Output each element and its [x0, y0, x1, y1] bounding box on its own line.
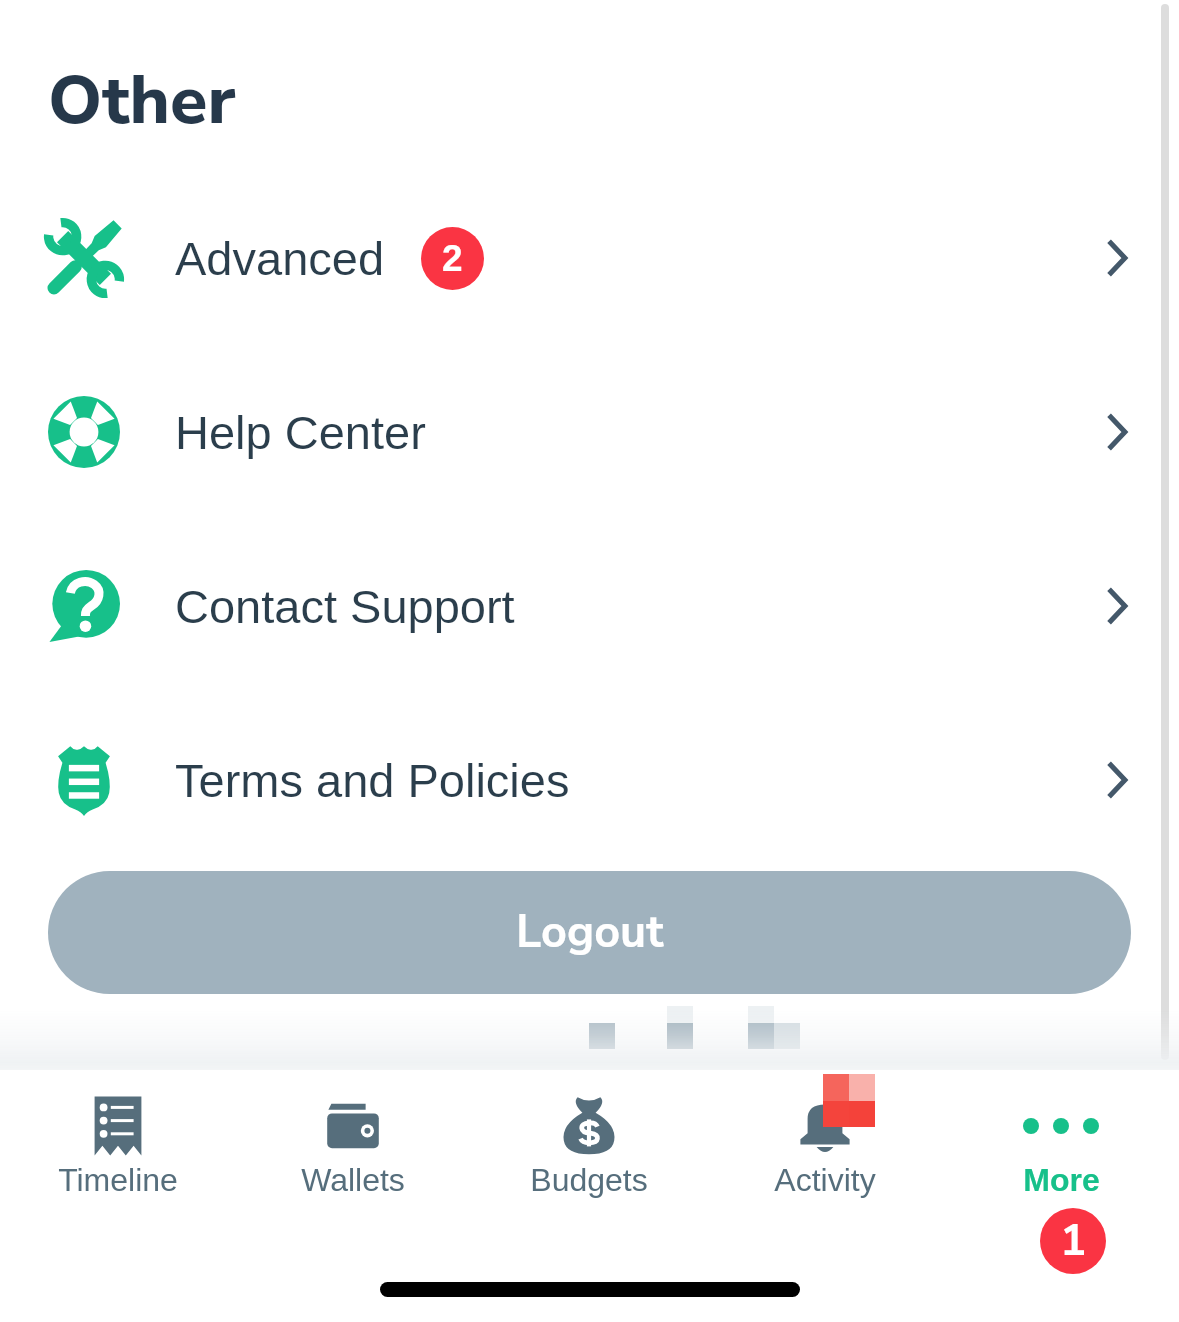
- staticText: 1: [1060, 1211, 1087, 1271]
- other: Timeline: [88, 1096, 148, 1156]
- other: Open: [1106, 761, 1128, 799]
- staticText: Wallets: [301, 1162, 405, 1198]
- other: Advanced: [48, 222, 120, 294]
- button[interactable]: Help Center: [0, 345, 1179, 519]
- other: Open: [1106, 239, 1128, 277]
- other: Help Center: [48, 396, 120, 468]
- button[interactable]: More: [943, 1070, 1179, 1230]
- staticText: Other: [48, 54, 236, 147]
- other: Open: [1106, 587, 1128, 625]
- button[interactable]: Budgets: [471, 1070, 707, 1230]
- staticText: Terms and Policies: [175, 754, 570, 807]
- staticText: More: [1023, 1162, 1100, 1198]
- other: Terms and Policies: [48, 744, 120, 816]
- staticText: Budgets: [530, 1162, 648, 1198]
- other: Budgets: [559, 1096, 619, 1156]
- other: Activity: [795, 1096, 855, 1156]
- staticText: Contact Support: [175, 580, 515, 633]
- other: More: [1031, 1096, 1091, 1156]
- staticText: Activity: [774, 1162, 876, 1198]
- other: Open: [1106, 413, 1128, 451]
- button[interactable]: Activity: [707, 1070, 943, 1230]
- staticText: Timeline: [58, 1162, 178, 1198]
- button[interactable]: Terms and Policies: [0, 693, 1179, 867]
- staticText: Logout: [516, 902, 664, 963]
- button[interactable]: Advanced: [0, 171, 1179, 345]
- other: Contact Support: [48, 570, 120, 642]
- staticText: 2: [442, 238, 463, 279]
- other: Wallets: [323, 1096, 383, 1156]
- button[interactable]: Contact Support: [0, 519, 1179, 693]
- staticText: Advanced: [175, 232, 385, 285]
- staticText: Help Center: [175, 406, 426, 459]
- button[interactable]: Logout: [48, 871, 1131, 994]
- button[interactable]: Timeline: [0, 1070, 235, 1230]
- button[interactable]: Wallets: [235, 1070, 471, 1230]
